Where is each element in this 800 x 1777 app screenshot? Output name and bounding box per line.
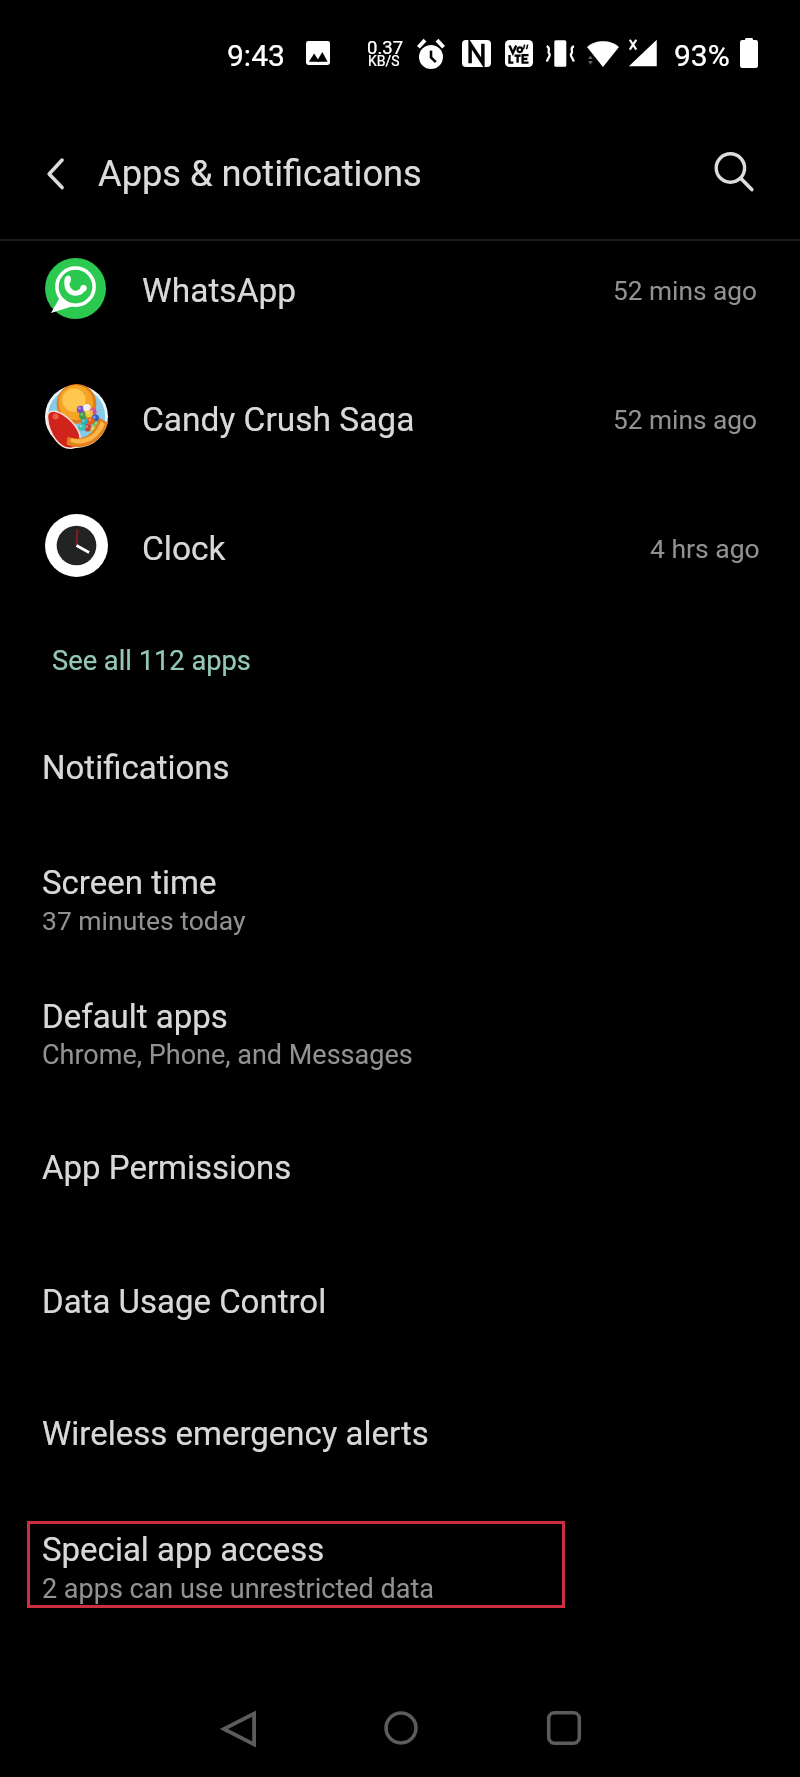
- staticText: Apps & notifications: [98, 152, 422, 194]
- button[interactable]: Candy Crush Saga: [0, 370, 800, 498]
- button[interactable]: Default apps: [0, 972, 800, 1100]
- staticText: KB/S: [368, 53, 400, 69]
- staticText: Notifications: [42, 748, 230, 787]
- button[interactable]: Back: [204, 1694, 274, 1764]
- button[interactable]: Notifications: [0, 722, 800, 834]
- staticText: 37 minutes today: [42, 905, 246, 936]
- button[interactable]: Home: [366, 1693, 436, 1763]
- staticText: WhatsApp: [142, 271, 297, 310]
- button[interactable]: Screen time: [0, 840, 800, 968]
- staticText: Wireless emergency alerts: [42, 1414, 429, 1453]
- staticText: 0.37: [367, 37, 404, 59]
- staticText: App Permissions: [42, 1148, 292, 1187]
- staticText: 4 hrs ago: [650, 533, 760, 564]
- button[interactable]: Clock: [0, 499, 800, 627]
- staticText: Data Usage Control: [42, 1282, 327, 1321]
- staticText: Special app access: [42, 1530, 325, 1569]
- button[interactable]: App Permissions: [0, 1122, 800, 1234]
- staticText: 2 apps can use unrestricted data: [42, 1573, 434, 1605]
- button[interactable]: Special app access: [27, 1521, 565, 1608]
- button[interactable]: See all 112 apps: [0, 620, 800, 720]
- staticText: 52 mins ago: [613, 276, 757, 307]
- staticText: See all 112 apps: [52, 645, 251, 677]
- staticText: 52 mins ago: [613, 405, 757, 436]
- staticText: Clock: [142, 529, 226, 568]
- button[interactable]: Search settings: [705, 142, 765, 202]
- button[interactable]: Navigate up: [30, 146, 86, 202]
- button[interactable]: Data Usage Control: [0, 1256, 800, 1368]
- button[interactable]: Wireless emergency alerts: [0, 1389, 800, 1501]
- button[interactable]: Recent apps: [529, 1693, 599, 1763]
- staticText: 9:43: [227, 38, 285, 73]
- staticText: Chrome, Phone, and Messages: [42, 1039, 413, 1071]
- button[interactable]: WhatsApp: [0, 241, 800, 369]
- staticText: Candy Crush Saga: [142, 400, 415, 439]
- staticText: 93%: [674, 38, 730, 73]
- staticText: Default apps: [42, 997, 228, 1036]
- staticText: Screen time: [42, 863, 217, 902]
